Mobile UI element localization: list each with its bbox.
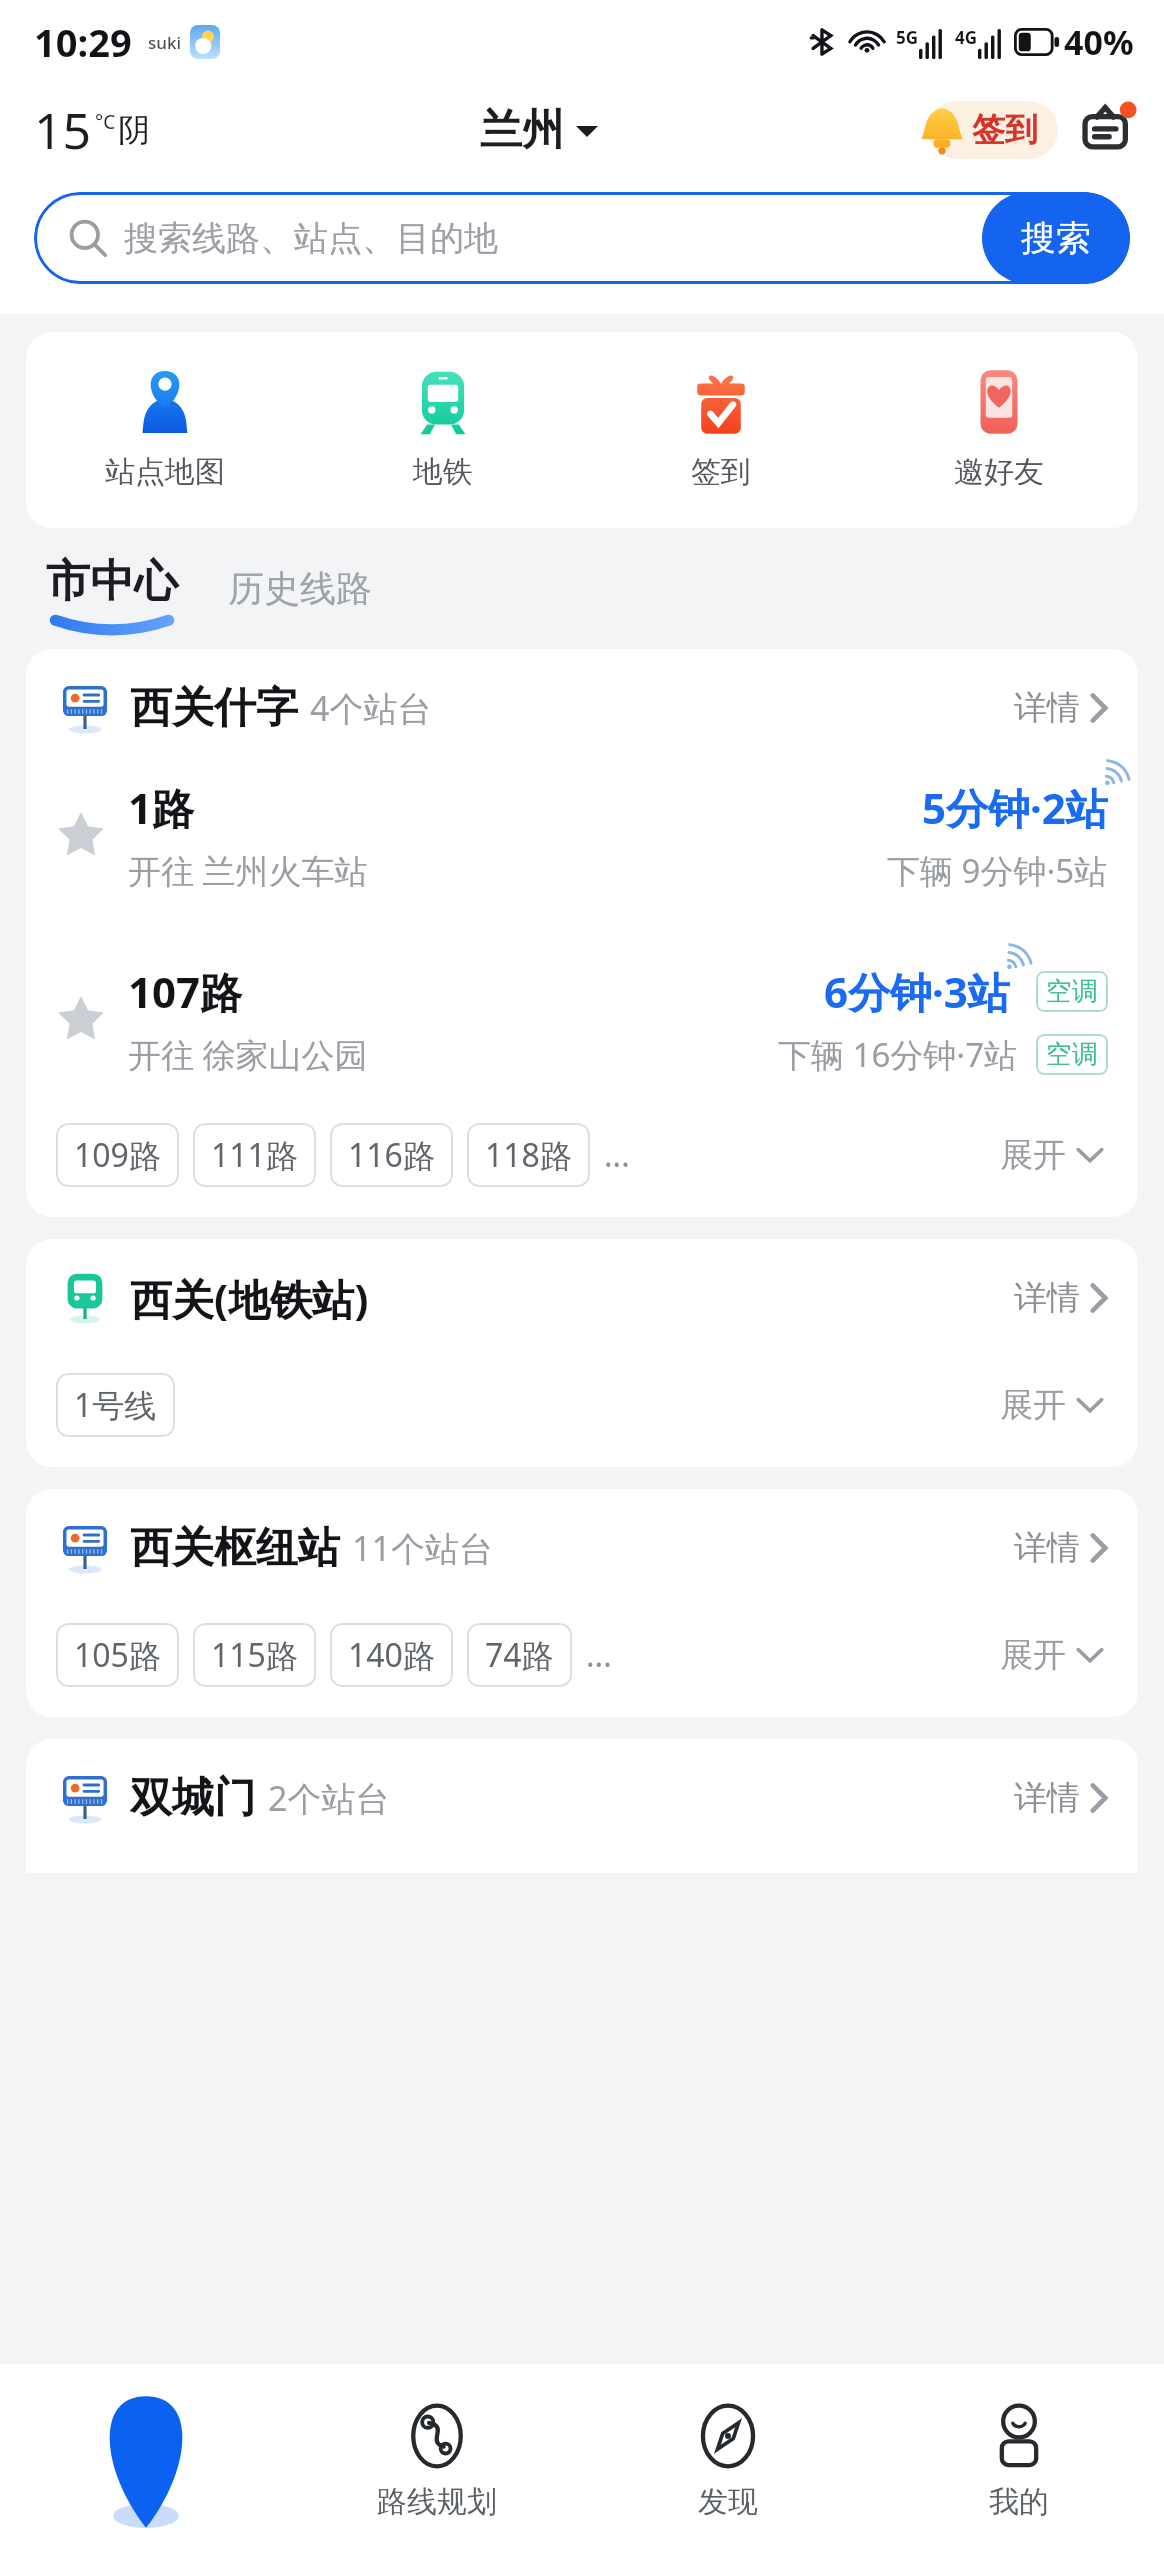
button[interactable]: 历史线路: [222, 562, 378, 635]
staticText: 发现: [698, 2483, 758, 2521]
button[interactable]: 109路: [56, 1123, 179, 1187]
button[interactable]: 展开: [996, 1130, 1108, 1180]
button[interactable]: 市中心: [42, 554, 182, 635]
staticText: 详情: [1014, 1777, 1080, 1819]
button[interactable]: 74路: [467, 1623, 572, 1687]
staticText: 5G: [896, 26, 919, 49]
button[interactable]: 西关什字: [26, 649, 1138, 743]
button[interactable]: 路线规划: [291, 2364, 582, 2560]
staticText: 下辆 16分钟·7站: [778, 1032, 1018, 1077]
staticText: 站点地图: [105, 453, 225, 491]
button[interactable]: 站点地图: [26, 332, 304, 528]
button[interactable]: 签到: [582, 332, 860, 528]
button[interactable]: 1路: [26, 757, 1138, 915]
staticText: 105路: [74, 1633, 161, 1677]
staticText: 兰州: [480, 104, 564, 157]
button[interactable]: 实时公交: [0, 2364, 291, 2560]
staticText: 展开: [1000, 1634, 1066, 1676]
staticText: 搜索: [1021, 216, 1091, 260]
staticText: suki: [148, 31, 182, 54]
staticText: 西关枢纽站: [130, 1522, 340, 1575]
button[interactable]: 我的: [873, 2364, 1164, 2560]
staticText: 开往 徐家山公园: [128, 1032, 368, 1077]
staticText: 签到: [972, 109, 1038, 151]
button[interactable]: 118路: [467, 1123, 590, 1187]
staticText: 107路: [128, 963, 243, 1020]
staticText: 西关(地铁站): [130, 1270, 369, 1327]
staticText: 地铁: [413, 453, 473, 491]
staticText: 1号线: [74, 1383, 157, 1427]
button[interactable]: 105路: [56, 1623, 179, 1687]
staticText: 签到: [691, 453, 751, 491]
staticText: 109路: [74, 1133, 161, 1177]
staticText: 下辆 9分钟·5站: [887, 848, 1108, 893]
staticText: 74路: [485, 1633, 554, 1677]
button[interactable]: 111路: [193, 1123, 316, 1187]
staticText: 详情: [1014, 1277, 1080, 1319]
button[interactable]: 邀好友: [860, 332, 1138, 528]
staticText: 空调: [1046, 1038, 1098, 1071]
staticText: 15: [34, 96, 92, 164]
staticText: 展开: [1000, 1134, 1066, 1176]
button[interactable]: 双城门: [26, 1739, 1138, 1833]
staticText: 开往 兰州火车站: [128, 848, 368, 893]
button[interactable]: 公告: [1080, 102, 1136, 158]
button[interactable]: 西关枢纽站: [26, 1489, 1138, 1583]
staticText: ...: [586, 1633, 612, 1677]
staticText: 展开: [1000, 1384, 1066, 1426]
staticText: 详情: [1014, 687, 1080, 729]
button[interactable]: 1号线: [56, 1373, 175, 1437]
staticText: 116路: [348, 1133, 435, 1177]
staticText: 4G: [955, 26, 978, 49]
button[interactable]: 搜索: [982, 192, 1130, 284]
staticText: °C: [95, 109, 116, 135]
staticText: 11个站台: [352, 1525, 493, 1571]
staticText: 邀好友: [954, 453, 1044, 491]
button[interactable]: 116路: [330, 1123, 453, 1187]
staticText: 4个站台: [310, 685, 432, 731]
staticText: 路线规划: [377, 2483, 497, 2521]
button[interactable]: 发现: [582, 2364, 873, 2560]
button[interactable]: 107路: [26, 941, 1138, 1099]
staticText: 历史线路: [228, 566, 372, 611]
staticText: 40%: [1064, 19, 1134, 65]
staticText: 140路: [348, 1633, 435, 1677]
staticText: ...: [604, 1133, 630, 1177]
button[interactable]: 展开: [996, 1380, 1108, 1430]
staticText: 115路: [211, 1633, 298, 1677]
staticText: 我的: [989, 2483, 1049, 2521]
staticText: 10:29: [34, 16, 132, 68]
button[interactable]: 兰州: [470, 96, 608, 165]
staticText: 1路: [128, 779, 195, 836]
button[interactable]: 140路: [330, 1623, 453, 1687]
button[interactable]: 签到: [928, 101, 1058, 159]
staticText: 搜索线路、站点、目的地: [124, 217, 498, 260]
staticText: 6分钟·3站: [824, 963, 1010, 1020]
button[interactable]: 搜索线路、站点、目的地: [34, 192, 1130, 284]
button[interactable]: 展开: [996, 1630, 1108, 1680]
staticText: 详情: [1014, 1527, 1080, 1569]
staticText: 111路: [211, 1133, 298, 1177]
staticText: 2个站台: [268, 1775, 390, 1821]
button[interactable]: 西关(地铁站): [26, 1239, 1138, 1333]
staticText: 双城门: [130, 1772, 256, 1825]
staticText: 西关什字: [130, 682, 298, 735]
button[interactable]: 地铁: [304, 332, 582, 528]
staticText: 空调: [1046, 975, 1098, 1008]
button[interactable]: 115路: [193, 1623, 316, 1687]
staticText: 市中心: [46, 554, 178, 609]
staticText: 5分钟·2站: [922, 779, 1108, 836]
staticText: 阴: [118, 110, 150, 150]
staticText: 118路: [485, 1133, 572, 1177]
